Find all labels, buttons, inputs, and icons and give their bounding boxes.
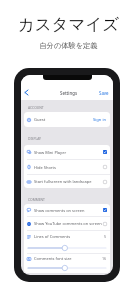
staticText: Sign in <box>93 117 107 123</box>
staticText: Lines of Comments <box>34 234 71 239</box>
staticText: Settings <box>60 90 78 96</box>
button[interactable]: Save <box>95 88 113 98</box>
staticText: Hide Shorts <box>34 165 56 170</box>
button[interactable]: Back <box>21 87 32 98</box>
staticText: Show comments on screen <box>34 208 85 213</box>
staticText: COMMENT <box>28 197 45 202</box>
staticText: Guest <box>34 117 46 123</box>
button[interactable]: Guest <box>24 112 110 127</box>
button[interactable]: Start fullscreen with landscape <box>24 175 110 188</box>
button[interactable]: Show YouTube comments on screen <box>24 217 110 230</box>
button[interactable]: Show Mini Player <box>24 145 110 159</box>
staticText: Show YouTube comments on screen <box>34 221 102 226</box>
staticText: Save <box>99 90 109 96</box>
staticText: DISPLAY <box>28 136 42 141</box>
staticText: カスタマイズ <box>0 14 137 35</box>
button[interactable]: Lines of Comments <box>24 231 110 253</box>
staticText: 16 <box>102 256 107 261</box>
button[interactable]: Hide Shorts <box>24 160 110 174</box>
staticText: Start fullscreen with landscape <box>34 179 92 184</box>
staticText: 自分の体験を定義 <box>0 41 137 50</box>
staticText: Comments font size <box>34 256 72 261</box>
staticText: 5 <box>104 234 107 239</box>
button[interactable]: Comments font size <box>24 254 110 273</box>
staticText: Show Mini Player <box>34 150 67 155</box>
staticText: ACCOUNT <box>28 105 44 110</box>
button[interactable]: Show comments on screen <box>24 204 110 216</box>
